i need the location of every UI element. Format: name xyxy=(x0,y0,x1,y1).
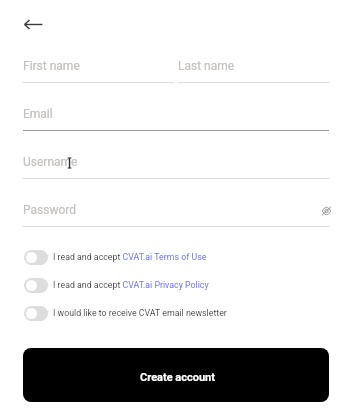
staticText: Username xyxy=(23,155,78,169)
button[interactable]: Last name xyxy=(178,57,329,83)
button[interactable]: Show password xyxy=(317,202,335,220)
button[interactable]: Password xyxy=(23,201,329,227)
button[interactable]: I read and accept CVAT.ai Privacy Policy xyxy=(0,275,350,295)
staticText: First name xyxy=(23,59,80,73)
button[interactable]: Back xyxy=(14,13,52,35)
staticText: Password xyxy=(23,203,77,217)
button[interactable]: Username xyxy=(23,153,329,179)
staticText: I read and accept CVAT.ai Terms of Use xyxy=(53,252,207,262)
button[interactable]: I would like to receive CVAT email newsl… xyxy=(0,303,350,323)
button[interactable]: Create account xyxy=(23,348,329,402)
staticText: Last name xyxy=(178,59,235,73)
staticText: Create account xyxy=(140,371,215,384)
staticText: I would like to receive CVAT email newsl… xyxy=(53,308,227,318)
button[interactable]: I read and accept CVAT.ai Terms of Use xyxy=(0,247,350,267)
button[interactable]: First name xyxy=(23,57,174,83)
staticText: Email xyxy=(23,107,53,121)
staticText: I read and accept CVAT.ai Privacy Policy xyxy=(53,280,209,290)
button[interactable]: Email xyxy=(23,105,329,131)
